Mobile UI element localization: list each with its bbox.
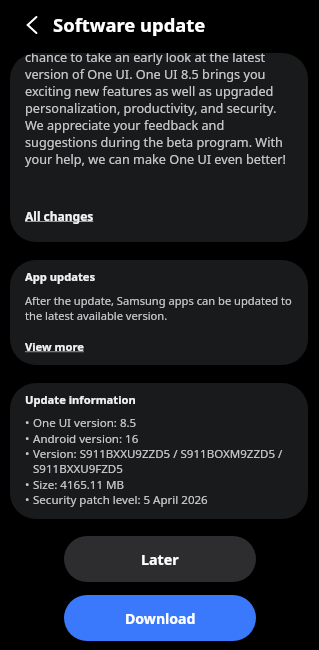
staticText: Version: S911BXXU9ZZD5 / S911BOXM9ZZD5 / [33,446,283,462]
staticText: • [25,431,30,447]
staticText: Security patch level: 5 April 2026 [33,492,208,508]
staticText: • [25,446,30,462]
button[interactable]: Later [64,536,256,582]
staticText: S911BXXU9FZD5 [33,461,123,477]
button[interactable]: Back [14,6,52,44]
staticText: • [25,477,30,493]
staticText: Size: 4165.11 MB [33,477,125,493]
button[interactable]: All changes [25,208,94,224]
button[interactable]: Download [64,595,256,641]
staticText: • [25,492,30,508]
staticText: Later [141,550,179,569]
staticText: App updates [25,269,96,284]
button[interactable]: View more [25,339,84,354]
staticText: After the update, Samsung apps can be up… [25,293,293,323]
staticText: Software update [53,12,206,37]
staticText: • [25,415,30,431]
staticText: One UI version: 8.5 [33,415,137,431]
staticText: Download [125,609,196,628]
staticText: Update information [25,392,136,407]
staticText: chance to take an early look at the late… [25,53,293,167]
staticText: Android version: 16 [33,431,139,447]
